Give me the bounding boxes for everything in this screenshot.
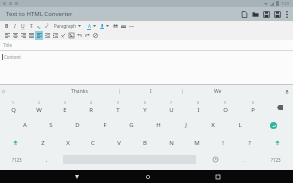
staticText: T (116, 106, 120, 114)
button[interactable]: x² (43, 21, 51, 31)
button[interactable]: B (132, 134, 158, 151)
staticText: 9 (224, 100, 227, 105)
staticText: P (251, 106, 255, 114)
staticText: We (214, 88, 222, 95)
staticText: 4 (90, 100, 93, 105)
button[interactable]: Justify (27, 31, 35, 40)
button[interactable]: S (38, 116, 64, 134)
button[interactable]: Settings (2, 90, 5, 93)
button[interactable]: Undo (75, 31, 83, 40)
button[interactable]: Shift (262, 134, 293, 151)
button[interactable]: ! (210, 134, 236, 151)
button[interactable]: Recent apps (212, 171, 223, 182)
button[interactable]: I (11, 21, 19, 31)
button[interactable]: 4 (78, 98, 104, 116)
staticText: A (88, 23, 91, 29)
staticText: x₂ (37, 24, 41, 29)
button[interactable]: Z (30, 134, 55, 151)
button[interactable]: Open (250, 7, 261, 21)
button[interactable]: 5 (104, 98, 131, 116)
staticText: S (49, 121, 53, 129)
button[interactable]: T (27, 21, 35, 31)
button[interactable]: K (199, 116, 226, 134)
button[interactable]: Redo (83, 31, 91, 40)
button[interactable]: Indent more (51, 31, 59, 40)
button[interactable]: 6 (131, 98, 158, 116)
button[interactable]: Indent less (43, 31, 51, 40)
button[interactable]: 1 (0, 98, 26, 116)
button[interactable]: A (12, 116, 38, 134)
button[interactable]: B (3, 21, 11, 31)
staticText: U (169, 106, 174, 114)
button[interactable]: J (172, 116, 199, 134)
staticText: T (30, 23, 33, 30)
button[interactable]: N (158, 134, 184, 151)
staticText: H (156, 121, 161, 129)
button[interactable]: Home (142, 171, 153, 182)
button[interactable]: H (145, 116, 172, 134)
staticText: C (91, 139, 95, 147)
button[interactable]: More options (283, 7, 290, 21)
button[interactable]: ? (236, 134, 262, 151)
staticText: B (5, 23, 9, 30)
button[interactable]: F (91, 116, 118, 134)
button[interactable]: V (106, 134, 132, 151)
button[interactable]: L (226, 116, 253, 134)
button[interactable]: Text color (98, 21, 111, 31)
button[interactable]: Enter (253, 116, 293, 134)
staticText: N (169, 139, 174, 147)
button[interactable]: C (80, 134, 106, 151)
button[interactable]: Text color (85, 21, 98, 31)
staticText: Thanks (71, 88, 88, 95)
staticText: V (117, 139, 121, 147)
button[interactable]: 8 (185, 98, 212, 116)
button[interactable]: We (208, 86, 228, 97)
button[interactable]: New document (239, 7, 250, 21)
button[interactable]: Save (261, 7, 272, 21)
button[interactable]: M (184, 134, 210, 151)
button[interactable]: Content (0, 51, 293, 84)
button[interactable]: 0 (239, 98, 266, 116)
staticText: Content (4, 54, 21, 60)
button[interactable]: Paragraph (53, 23, 82, 29)
button[interactable]: D (64, 116, 91, 134)
button[interactable]: Divider (127, 22, 135, 31)
button[interactable]: Thanks (65, 86, 94, 97)
staticText: F (103, 121, 107, 129)
button[interactable]: Save as (272, 7, 283, 21)
button[interactable]: Align center (11, 31, 19, 40)
button[interactable]: Clear (91, 31, 99, 40)
button[interactable]: Backspace (266, 98, 293, 116)
button[interactable]: Bulleted list (35, 31, 43, 40)
button[interactable]: 2 (26, 98, 52, 116)
button[interactable]: U (19, 21, 27, 31)
button[interactable]: Horizontal rule (119, 22, 127, 31)
button[interactable]: Voice input (284, 89, 289, 94)
staticText: B (143, 139, 147, 147)
button[interactable]: ?123 (258, 151, 293, 168)
button[interactable]: Shift (0, 134, 30, 151)
button[interactable]: 3 (52, 98, 78, 116)
button[interactable]: X (55, 134, 80, 151)
staticText: 8 (197, 100, 200, 105)
button[interactable]: 9 (212, 98, 239, 116)
button[interactable]: Insert link (59, 31, 67, 40)
button[interactable]: Insert image (67, 31, 75, 40)
button[interactable]: Clear formatting (111, 22, 119, 31)
button[interactable]: 7 (158, 98, 185, 116)
button[interactable]: Title (0, 40, 293, 50)
staticText: I (197, 106, 200, 114)
button[interactable]: I (144, 86, 158, 97)
button[interactable]: Align right (19, 31, 27, 40)
staticText: I (150, 88, 152, 95)
button[interactable]: Emoji (199, 151, 231, 168)
button[interactable]: G (118, 116, 145, 134)
button[interactable]: x₂ (35, 21, 43, 31)
button[interactable]: ?123 (0, 151, 34, 168)
button[interactable]: Back (71, 171, 82, 182)
button[interactable]: Align left (3, 31, 11, 40)
staticText: ?123 (271, 157, 281, 163)
